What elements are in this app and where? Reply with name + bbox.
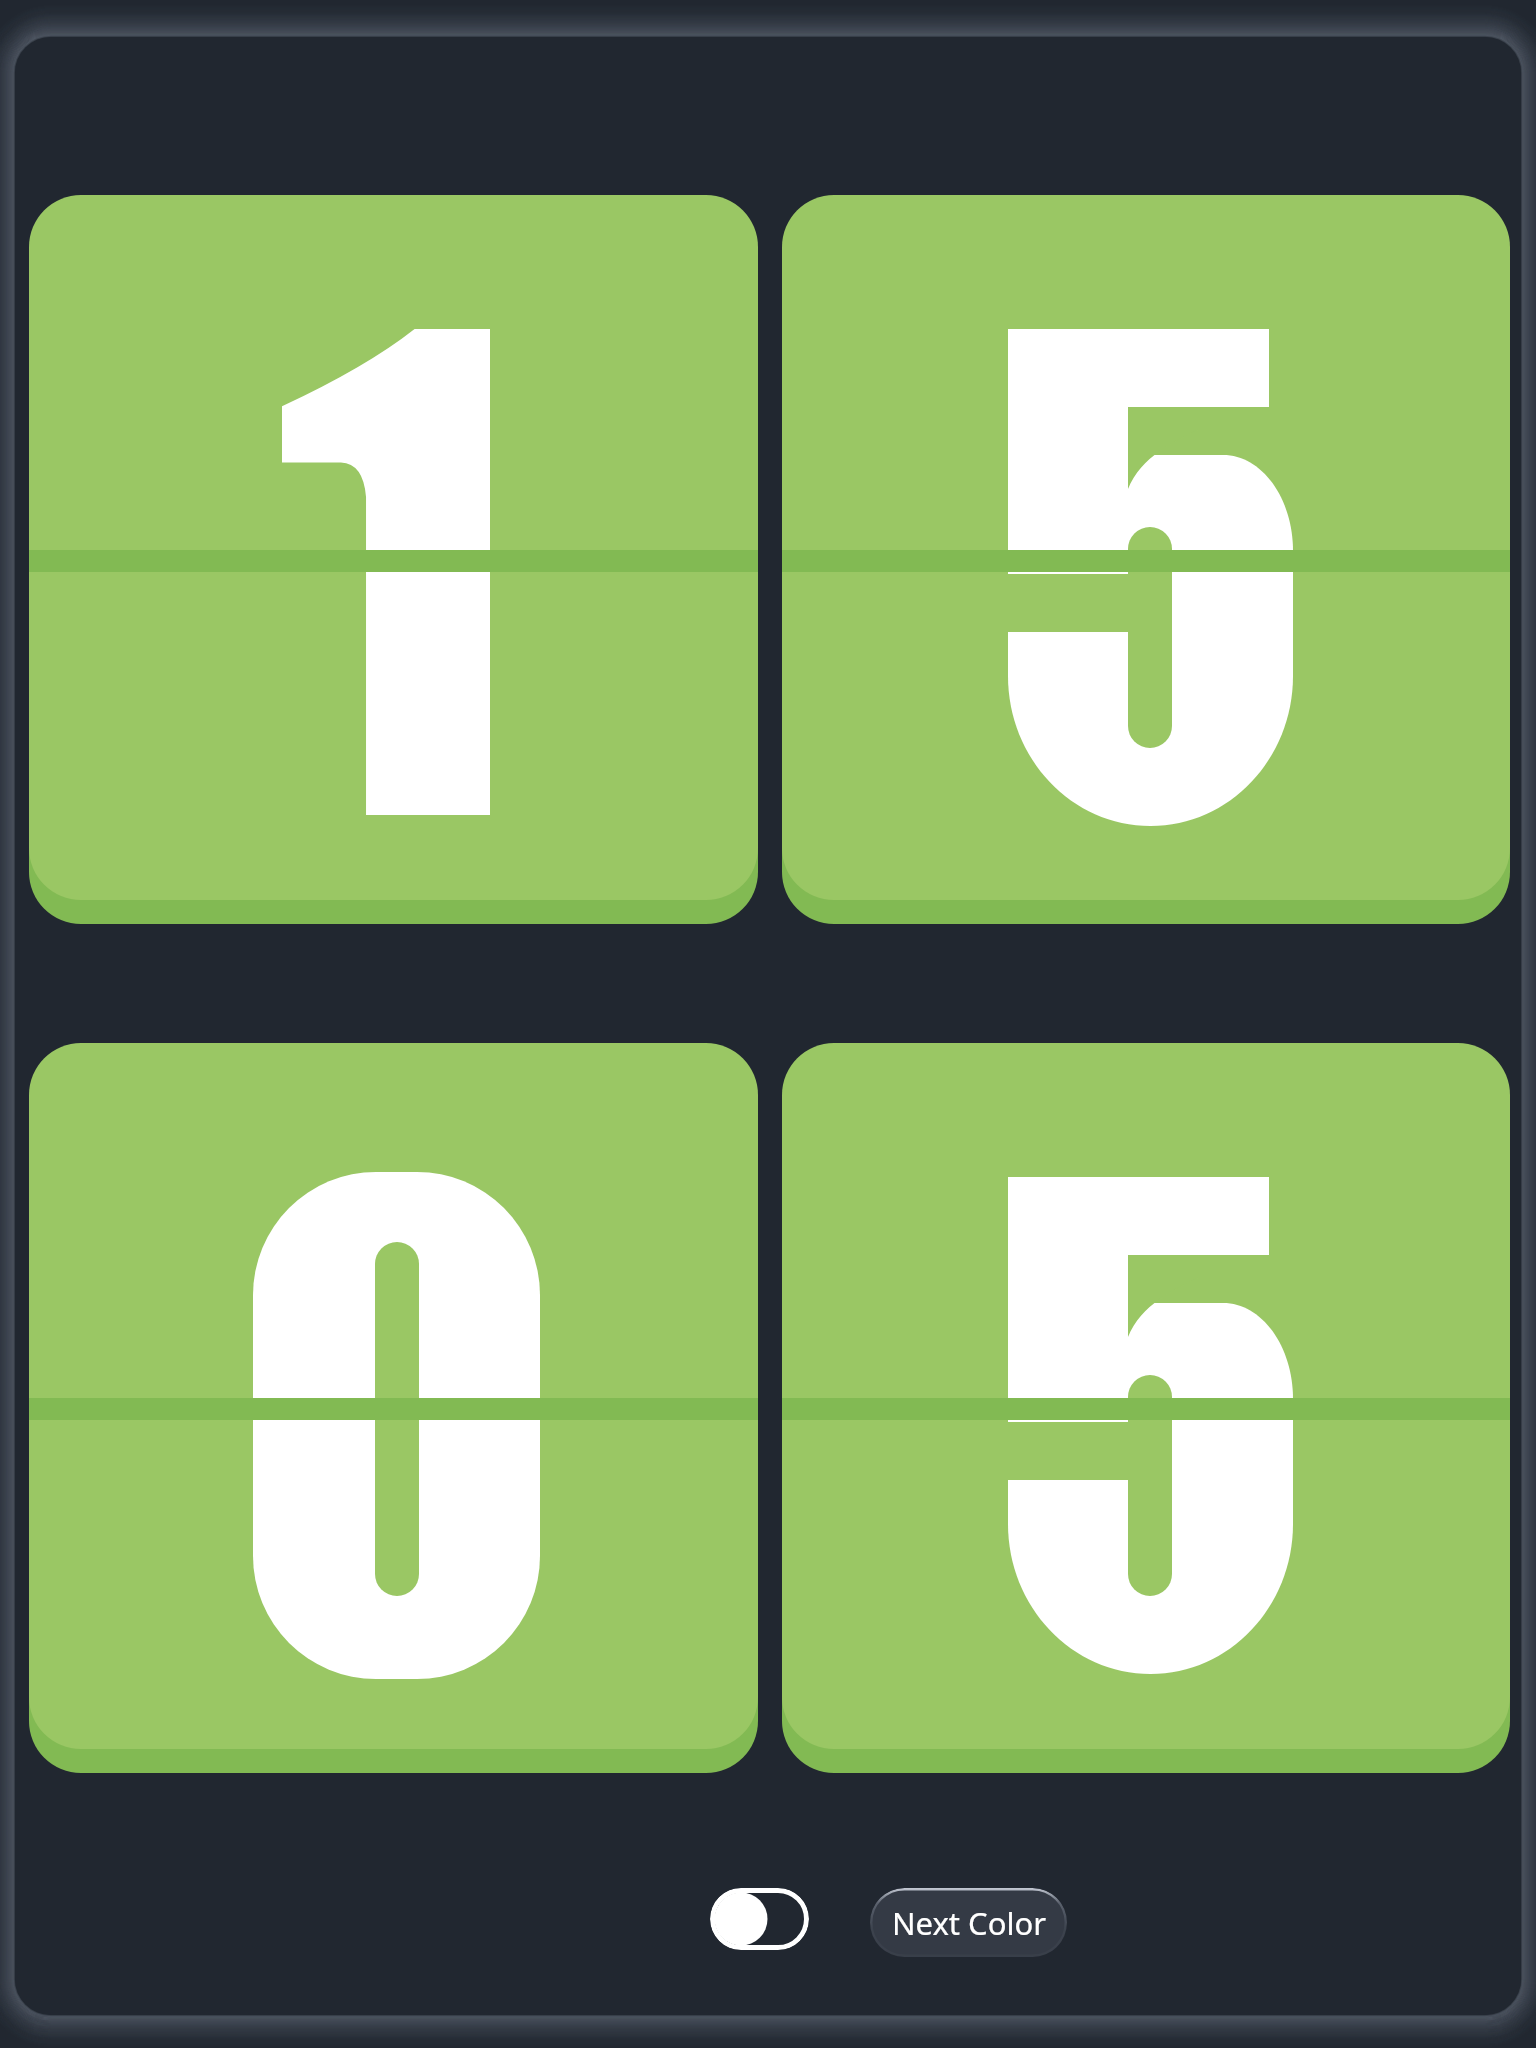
button[interactable]: Next Color [870,1888,1067,1957]
button[interactable]: Flip digit 5 [782,1043,1510,1773]
button[interactable]: Flip digit 1 [29,195,758,924]
staticText: Next Color [892,1902,1046,1944]
button[interactable]: Toggle seconds display [710,1888,809,1950]
button[interactable]: Flip digit 5 [782,195,1510,924]
button[interactable]: Flip digit 0 [29,1043,758,1773]
